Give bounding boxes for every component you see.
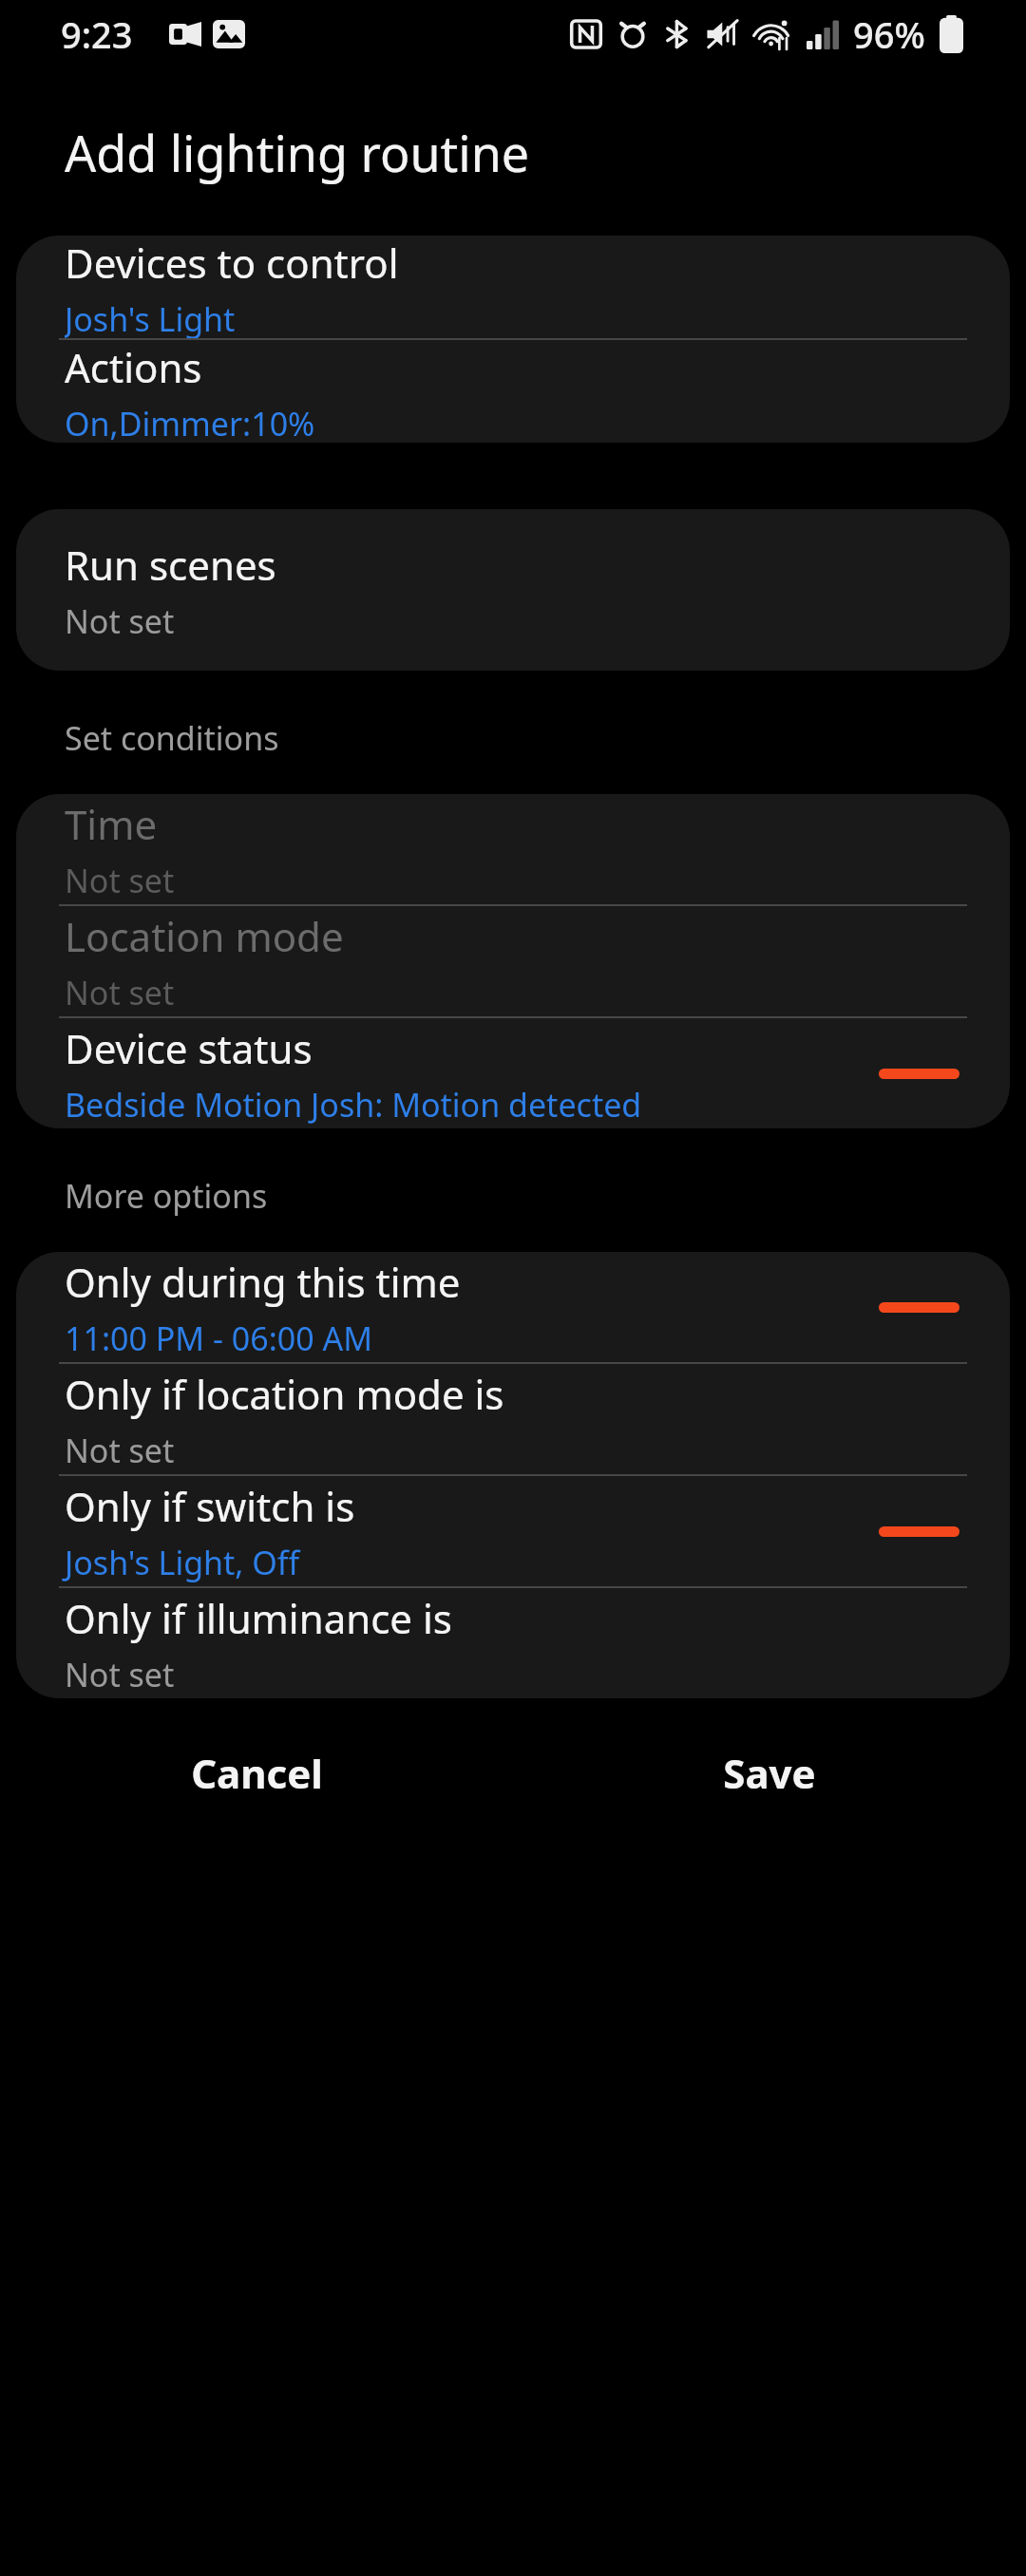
button[interactable]: Only during this time [16, 1252, 1010, 1362]
staticText: Only if illuminance is [65, 1591, 452, 1645]
staticText: Josh's Light [65, 297, 236, 338]
staticText: Not set [65, 971, 175, 1014]
staticText: Bedside Motion Josh: Motion detected [65, 1083, 642, 1127]
staticText: 96% [853, 9, 925, 59]
staticText: Run scenes [65, 538, 276, 592]
staticText: Cancel [191, 1746, 323, 1800]
button[interactable]: Devices to control [16, 236, 1010, 338]
button[interactable]: Device status [16, 1018, 1010, 1128]
button[interactable]: Only if location mode is [16, 1364, 1010, 1474]
staticText: Not set [65, 1429, 175, 1472]
staticText: Time [65, 797, 158, 851]
staticText: More options [65, 1174, 268, 1218]
staticText: Not set [65, 1653, 175, 1696]
button[interactable]: Only if illuminance is [16, 1588, 1010, 1698]
button[interactable]: Save [513, 1698, 1026, 1847]
button[interactable]: Only if switch is [16, 1476, 1010, 1586]
staticText: 9:23 [61, 9, 133, 59]
staticText: 11:00 PM - 06:00 AM [65, 1316, 373, 1360]
staticText: Not set [65, 599, 175, 643]
staticText: Set conditions [65, 716, 279, 760]
staticText: Only if switch is [65, 1479, 355, 1533]
button[interactable]: Cancel [0, 1698, 513, 1847]
staticText: Add lighting routine [65, 119, 530, 186]
button[interactable]: Remove condition [879, 1285, 959, 1329]
button[interactable]: Actions [16, 340, 1010, 443]
button[interactable]: Run scenes [16, 509, 1010, 671]
staticText: Location mode [65, 909, 344, 963]
button[interactable]: Remove condition [879, 1051, 959, 1095]
button[interactable]: Location mode [16, 906, 1010, 1016]
staticText: Not set [65, 859, 175, 902]
staticText: Actions [65, 340, 202, 394]
staticText: Only during this time [65, 1255, 461, 1309]
staticText: Devices to control [65, 236, 399, 290]
button[interactable]: Remove condition [879, 1509, 959, 1553]
button[interactable]: Time [16, 794, 1010, 904]
staticText: Only if location mode is [65, 1367, 504, 1421]
staticText: Josh's Light, Off [65, 1541, 300, 1584]
staticText: Device status [65, 1021, 313, 1075]
staticText: On,Dimmer:10% [65, 402, 315, 443]
staticText: Save [723, 1746, 816, 1800]
